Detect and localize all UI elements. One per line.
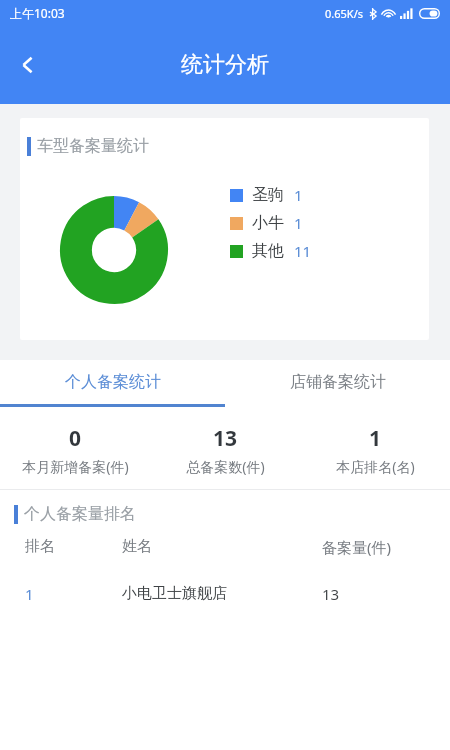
staticText: 小牛	[252, 213, 284, 233]
staticText: 车型备案量统计	[37, 136, 149, 156]
button[interactable]: 小牛	[230, 213, 303, 233]
staticText: 个人备案量排名	[24, 504, 136, 524]
staticText: 0.65K/s	[325, 6, 363, 21]
staticText: 备案量(件)	[322, 537, 392, 557]
button[interactable]: Back	[0, 38, 54, 92]
staticText: 本月新增备案(件)	[22, 457, 129, 476]
button[interactable]: 0	[0, 424, 150, 476]
staticText: 总备案数(件)	[186, 457, 265, 476]
staticText: 其他	[252, 241, 284, 261]
staticText: 圣驹	[252, 185, 284, 205]
staticText: 统计分析	[181, 51, 269, 79]
button[interactable]: 13	[150, 424, 300, 476]
staticText: 个人备案统计	[65, 372, 161, 392]
staticText: 小电卫士旗舰店	[122, 584, 322, 603]
staticText: 排名	[25, 537, 122, 556]
staticText: 13	[213, 424, 238, 453]
staticText: 11	[294, 241, 312, 261]
staticText: 1	[25, 584, 122, 604]
staticText: 1	[369, 424, 382, 453]
button[interactable]: 圣驹	[230, 185, 303, 205]
staticText: 0	[69, 424, 82, 453]
staticText: 姓名	[122, 537, 322, 556]
staticText: 店铺备案统计	[290, 372, 386, 392]
staticText: 上午10:03	[10, 5, 65, 21]
staticText: 13	[322, 584, 340, 604]
button[interactable]: 其他	[230, 241, 312, 261]
staticText: 本店排名(名)	[336, 457, 415, 476]
staticText: 1	[294, 185, 303, 205]
staticText: 1	[294, 213, 303, 233]
button[interactable]: 店铺备案统计	[225, 360, 450, 404]
button[interactable]: 个人备案统计	[0, 360, 225, 404]
button[interactable]: 1	[300, 424, 450, 476]
button[interactable]: 1	[0, 557, 450, 604]
